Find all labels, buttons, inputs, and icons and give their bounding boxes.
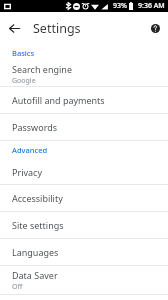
staticText: Data Saver	[12, 269, 58, 281]
staticText: 9:36 AM	[138, 1, 165, 11]
staticText: 93%	[113, 1, 127, 11]
button[interactable]: Help and feedback	[146, 19, 164, 37]
button[interactable]: Privacy	[0, 159, 168, 184]
button[interactable]: Autofill and payments	[0, 87, 168, 113]
button[interactable]: Site settings	[0, 212, 168, 238]
staticText: Advanced	[12, 145, 48, 155]
staticText: Basics	[12, 48, 35, 58]
staticText: Autofill and payments	[12, 94, 105, 106]
button[interactable]: Accessibility	[0, 185, 168, 211]
button[interactable]: Search engine	[0, 62, 168, 86]
staticText: Settings	[33, 20, 81, 37]
staticText: Off	[12, 282, 23, 292]
staticText: Search engine	[12, 63, 72, 75]
staticText: Passwords	[12, 121, 58, 133]
staticText: Privacy	[12, 166, 43, 178]
button[interactable]: Back	[4, 18, 24, 38]
staticText: Accessibility	[12, 192, 63, 204]
button[interactable]: Languages	[0, 239, 168, 265]
staticText: Site settings	[12, 219, 64, 231]
button[interactable]: Passwords	[0, 114, 168, 140]
staticText: Languages	[12, 246, 59, 258]
staticText: Google	[12, 76, 36, 86]
button[interactable]: Data Saver	[0, 266, 168, 294]
